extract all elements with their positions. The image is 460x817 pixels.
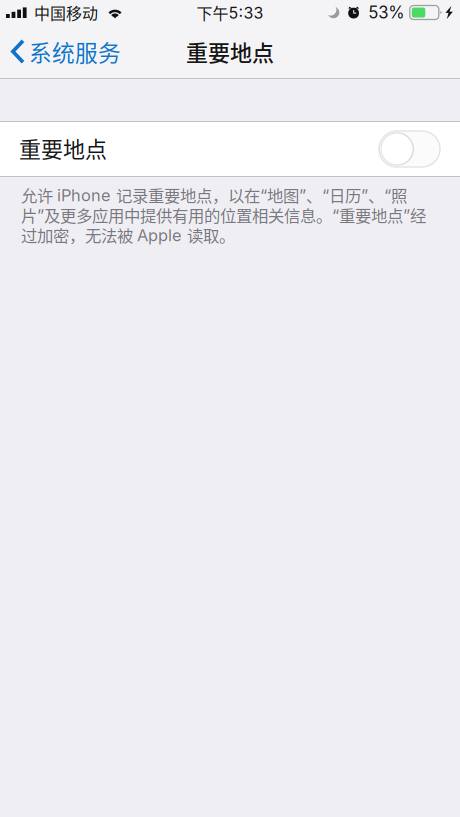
staticText: 重要地点 [186, 36, 274, 67]
button[interactable]: 系统服务 [0, 25, 131, 78]
staticText: 重要地点 [19, 132, 107, 164]
staticText: 下午5:33 [196, 1, 263, 24]
staticText: 允许 iPhone 记录重要地点，以在“地图”、“日历”、“照片”及更多应用中提… [21, 185, 426, 245]
staticText: 53% [368, 2, 404, 23]
button[interactable]: 重要地点 [0, 122, 460, 176]
staticText: 系统服务 [29, 35, 121, 68]
staticText: 中国移动 [34, 1, 98, 24]
